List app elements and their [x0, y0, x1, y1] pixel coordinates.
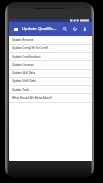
button[interactable]: Search: [60, 22, 70, 36]
button[interactable]: Update Comp/Tel for Certif.: [9, 44, 92, 52]
staticText: Update Resume: [12, 38, 34, 42]
staticText: Update Skill Data: [12, 71, 36, 75]
staticText: Update Comp/Tel for Certif.: [12, 46, 49, 50]
button[interactable]: Update Shift Data: [9, 77, 92, 85]
staticText: Update Licenses: [12, 63, 34, 67]
staticText: Update Qualific...: [22, 26, 60, 32]
button[interactable]: Update Certifications: [9, 53, 92, 61]
button[interactable]: What Should We Know About?: [9, 94, 92, 102]
staticText: What Should We Know About?: [12, 96, 53, 100]
button[interactable]: Account: [80, 22, 90, 36]
button[interactable]: Open navigation menu: [9, 22, 22, 36]
button[interactable]: Update Resume: [9, 36, 92, 44]
button[interactable]: Update Tools: [9, 86, 92, 94]
button[interactable]: Refresh: [70, 22, 80, 36]
staticText: Update Tools: [12, 88, 30, 92]
button[interactable]: Update Licenses: [9, 61, 92, 69]
staticText: Update Shift Data: [12, 79, 36, 83]
staticText: Update Certifications: [12, 55, 41, 59]
button[interactable]: Update Skill Data: [9, 69, 92, 77]
